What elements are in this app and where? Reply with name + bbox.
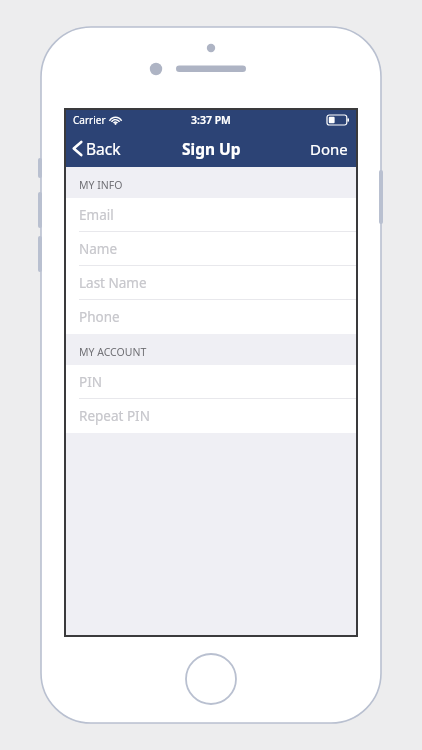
button[interactable]: Back <box>66 132 131 165</box>
staticText: Back <box>86 138 121 159</box>
staticText: Carrier <box>73 113 106 127</box>
button[interactable]: Repeat PIN <box>66 399 356 433</box>
staticText: Name <box>79 240 118 258</box>
button[interactable]: Name <box>66 232 356 266</box>
button[interactable]: Phone <box>66 300 356 334</box>
staticText: Sign Up <box>182 138 241 159</box>
staticText: Last Name <box>79 274 147 292</box>
staticText: 3:37 PM <box>191 113 231 127</box>
button[interactable]: PIN <box>66 365 356 399</box>
button[interactable]: Email <box>66 198 356 232</box>
button[interactable]: Last Name <box>66 266 356 300</box>
staticText: Email <box>79 206 114 224</box>
other: Battery <box>327 115 349 125</box>
staticText: MY INFO <box>79 178 123 192</box>
button[interactable]: Done <box>300 132 356 166</box>
staticText: Done <box>310 139 348 159</box>
staticText: Phone <box>79 308 120 326</box>
staticText: MY ACCOUNT <box>79 345 147 359</box>
staticText: Repeat PIN <box>79 407 150 425</box>
other: Wi-Fi signal <box>110 116 121 125</box>
staticText: PIN <box>79 373 103 391</box>
